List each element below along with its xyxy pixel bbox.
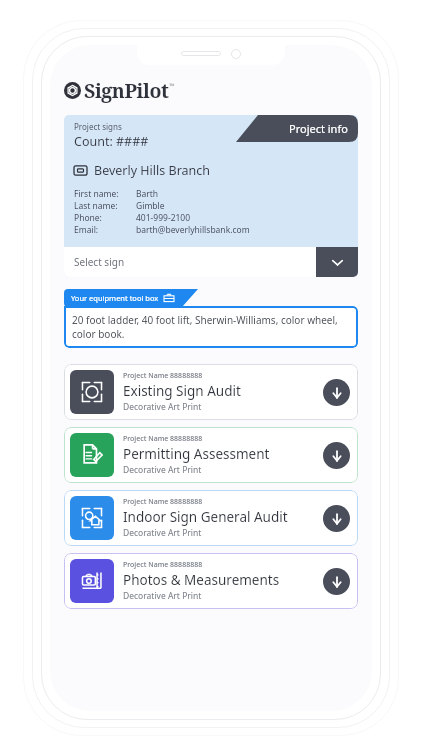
staticText: Decorative Art Print <box>123 401 202 413</box>
staticText: 20 foot ladder, 40 foot lift, Sherwin-Wi… <box>72 313 350 341</box>
staticText: Gimble <box>136 200 165 212</box>
button[interactable]: Download <box>323 379 350 406</box>
staticText: Select sign <box>74 255 125 269</box>
staticText: Barth <box>136 188 159 200</box>
button[interactable]: Project Name 88888888 <box>64 427 358 483</box>
staticText: Project Name 88888888 <box>123 497 203 507</box>
staticText: Count: #### <box>74 133 149 150</box>
button[interactable]: Project Name 88888888 <box>64 490 358 546</box>
staticText: Phone: <box>74 212 102 224</box>
button[interactable]: Download <box>323 442 350 469</box>
button[interactable]: Project Name 88888888 <box>64 364 358 420</box>
staticText: Project info <box>289 121 348 136</box>
staticText: ™ <box>169 82 175 90</box>
staticText: Project Name 88888888 <box>123 371 203 381</box>
staticText: barth@beverlyhillsbank.com <box>136 224 250 236</box>
staticText: Decorative Art Print <box>123 527 202 539</box>
button[interactable]: Project Name 88888888 <box>64 553 358 609</box>
staticText: Beverly Hills Branch <box>94 162 211 179</box>
staticText: Photos & Measurements <box>123 571 280 589</box>
staticText: Project Name 88888888 <box>123 560 203 570</box>
button[interactable]: Download <box>323 505 350 532</box>
staticText: First name: <box>74 188 119 200</box>
button[interactable]: Download <box>323 568 350 595</box>
staticText: Your equipment tool box <box>71 293 159 303</box>
staticText: 401-999-2100 <box>136 212 191 224</box>
staticText: Last name: <box>74 200 118 212</box>
staticText: Email: <box>74 224 99 236</box>
staticText: SignPilot <box>84 77 169 104</box>
staticText: Decorative Art Print <box>123 590 202 602</box>
staticText: Existing Sign Audit <box>123 382 241 400</box>
staticText: Permitting Assessment <box>123 445 270 463</box>
button[interactable]: Project info <box>236 115 358 142</box>
button[interactable]: Select sign <box>64 247 358 277</box>
staticText: Indoor Sign General Audit <box>123 508 288 526</box>
staticText: Project signs <box>74 121 122 132</box>
staticText: Project Name 88888888 <box>123 434 203 444</box>
staticText: Decorative Art Print <box>123 464 202 476</box>
